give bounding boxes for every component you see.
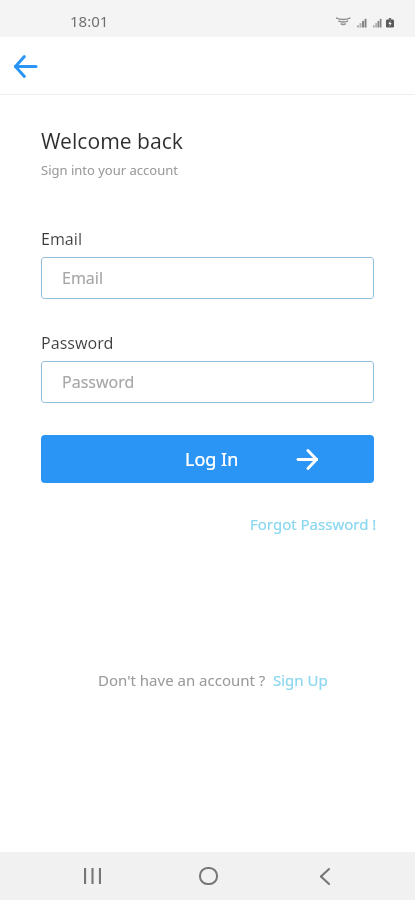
button[interactable]: Email: [41, 257, 374, 299]
button[interactable]: Password: [41, 361, 374, 403]
staticText: 18:01: [70, 11, 109, 31]
button[interactable]: Log In: [41, 435, 374, 483]
staticText: Email: [41, 228, 83, 250]
staticText: Password: [62, 371, 135, 393]
staticText: Email: [62, 267, 104, 289]
staticText: Don't have an account ?: [98, 670, 266, 690]
staticText: Sign into your account: [41, 161, 178, 179]
staticText: Log In: [185, 447, 239, 472]
staticText: Welcome back: [41, 127, 184, 156]
staticText: Sign Up: [273, 670, 328, 690]
staticText: Forgot Password !: [250, 514, 377, 534]
button[interactable]: Forgot Password !: [250, 514, 377, 534]
button[interactable]: Recent apps: [58, 852, 126, 900]
button[interactable]: Back: [291, 852, 359, 900]
staticText: Password: [41, 332, 114, 354]
button[interactable]: Sign Up: [273, 670, 328, 690]
button[interactable]: Back: [1, 42, 49, 90]
button[interactable]: Home: [174, 852, 242, 900]
